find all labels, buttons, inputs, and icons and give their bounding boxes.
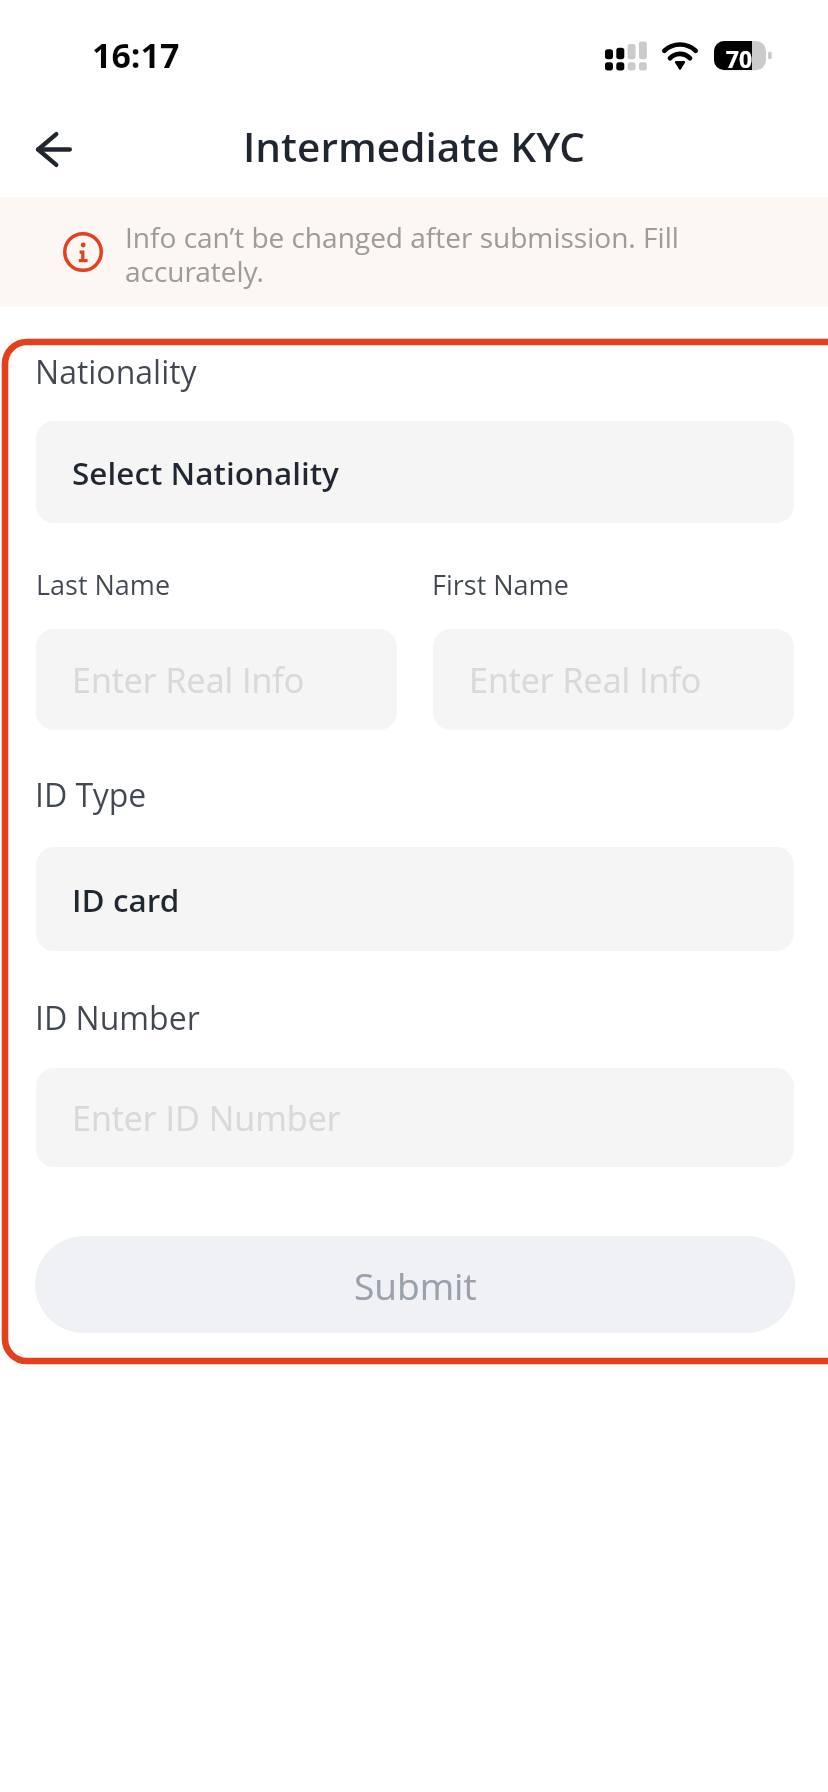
staticText: First Name (432, 566, 569, 603)
staticText: ID card (72, 878, 180, 921)
staticText: Enter Real Info (469, 657, 702, 703)
staticText: ID Type (35, 773, 147, 817)
staticText: Select Nationality (72, 451, 340, 494)
button[interactable]: ID card (36, 847, 794, 951)
staticText: Intermediate KYC (0, 119, 828, 174)
button[interactable]: Select Nationality (36, 421, 794, 523)
staticText: ID Number (35, 996, 200, 1040)
button[interactable]: Submit (35, 1236, 795, 1333)
staticText: 70 (719, 43, 759, 74)
staticText: 16:17 (92, 32, 180, 78)
staticText: Last Name (36, 566, 171, 603)
staticText: Enter ID Number (72, 1095, 341, 1141)
button[interactable]: Enter Real Info (433, 629, 794, 730)
staticText: Info can’t be changed after submission. … (125, 218, 679, 290)
staticText: Submit (354, 1260, 477, 1310)
staticText: Nationality (35, 350, 197, 394)
button[interactable]: Enter ID Number (36, 1068, 794, 1167)
button[interactable]: Back (19, 114, 89, 184)
button[interactable]: Enter Real Info (36, 629, 397, 730)
staticText: Enter Real Info (72, 657, 305, 703)
